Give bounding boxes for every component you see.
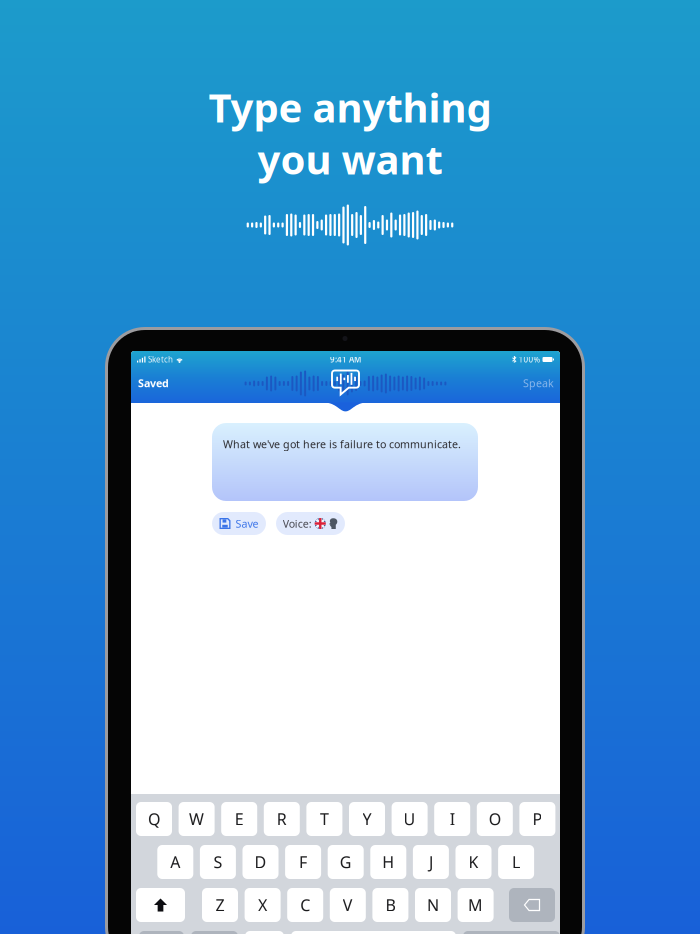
button[interactable]: Z bbox=[202, 888, 238, 922]
button[interactable]: Voice: bbox=[276, 512, 345, 535]
staticText: T bbox=[320, 808, 329, 830]
button[interactable]: I bbox=[434, 802, 470, 836]
staticText: Type anything bbox=[208, 80, 491, 133]
staticText: L bbox=[512, 851, 520, 873]
staticText: What we've got here is failure to commun… bbox=[223, 437, 461, 451]
staticText: P bbox=[532, 808, 542, 830]
staticText: Y bbox=[362, 808, 371, 830]
staticText: D bbox=[254, 851, 266, 873]
staticText: J bbox=[429, 851, 433, 873]
button[interactable]: L bbox=[498, 845, 534, 879]
button[interactable]: Y bbox=[349, 802, 385, 836]
staticText: G bbox=[340, 851, 352, 873]
staticText: M bbox=[468, 894, 483, 916]
button[interactable]: O bbox=[477, 802, 513, 836]
staticText: 9:41 AM bbox=[330, 354, 361, 365]
button[interactable]: J bbox=[413, 845, 449, 879]
staticText: O bbox=[489, 808, 501, 830]
button[interactable]: N bbox=[415, 888, 451, 922]
staticText: E bbox=[235, 808, 244, 830]
button[interactable]: K bbox=[455, 845, 491, 879]
staticText: R bbox=[277, 808, 287, 830]
button[interactable]: Speak bbox=[494, 371, 554, 395]
button[interactable]: S bbox=[200, 845, 236, 879]
staticText: Z bbox=[215, 894, 224, 916]
button[interactable]: B bbox=[372, 888, 408, 922]
staticText: F bbox=[299, 851, 307, 873]
button[interactable]: Delete bbox=[509, 888, 555, 922]
staticText: V bbox=[343, 894, 353, 916]
staticText: Q bbox=[148, 808, 160, 830]
staticText: U bbox=[404, 808, 416, 830]
staticText: C bbox=[300, 894, 310, 916]
staticText: X bbox=[258, 894, 267, 916]
staticText: K bbox=[468, 851, 478, 873]
staticText: W bbox=[189, 808, 204, 830]
staticText: S bbox=[213, 851, 222, 873]
button[interactable]: D bbox=[242, 845, 278, 879]
staticText: you want bbox=[257, 132, 442, 185]
button[interactable]: R bbox=[264, 802, 300, 836]
staticText: H bbox=[382, 851, 394, 873]
staticText: A bbox=[170, 851, 180, 873]
staticText: 100% bbox=[518, 354, 540, 365]
staticText: B bbox=[385, 894, 395, 916]
staticText: Speak bbox=[523, 376, 554, 390]
button[interactable]: Q bbox=[136, 802, 172, 836]
button[interactable]: V bbox=[330, 888, 366, 922]
staticText: N bbox=[427, 894, 439, 916]
staticText: Saved bbox=[138, 376, 169, 390]
button[interactable]: U bbox=[392, 802, 428, 836]
button[interactable]: P bbox=[519, 802, 555, 836]
button[interactable]: W bbox=[179, 802, 215, 836]
button[interactable]: G bbox=[328, 845, 364, 879]
button[interactable]: A bbox=[157, 845, 193, 879]
staticText: Sketch bbox=[148, 354, 173, 365]
button[interactable]: Save bbox=[212, 512, 266, 535]
button[interactable]: M bbox=[458, 888, 494, 922]
button[interactable]: C bbox=[287, 888, 323, 922]
button[interactable]: F bbox=[285, 845, 321, 879]
staticText: Voice: bbox=[283, 516, 312, 531]
button[interactable]: E bbox=[221, 802, 257, 836]
button[interactable]: T bbox=[306, 802, 342, 836]
button[interactable]: Shift bbox=[136, 888, 185, 922]
button[interactable]: Saved bbox=[138, 371, 198, 395]
button[interactable]: X bbox=[245, 888, 281, 922]
button[interactable]: H bbox=[370, 845, 406, 879]
staticText: Save bbox=[235, 516, 258, 531]
staticText: I bbox=[450, 808, 455, 830]
